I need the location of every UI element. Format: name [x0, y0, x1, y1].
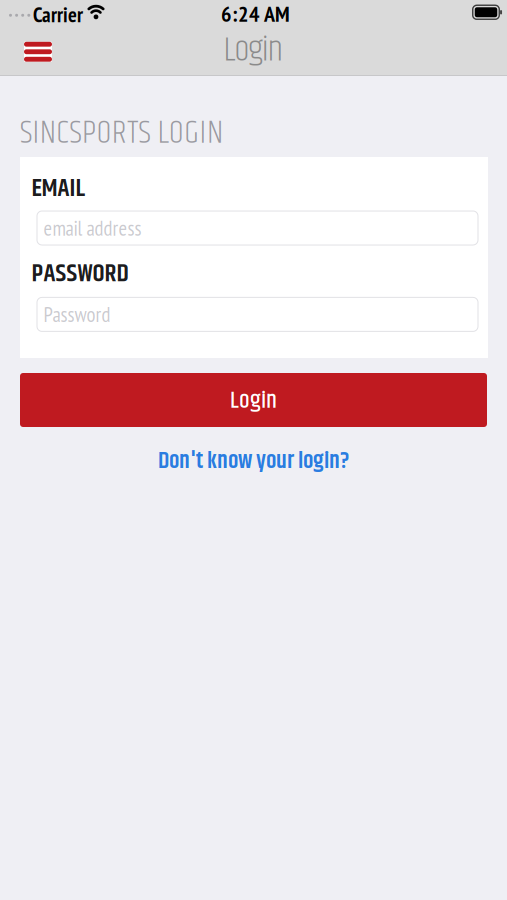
button[interactable]: Don't know your login? — [0, 443, 507, 479]
staticText: Login — [223, 24, 284, 77]
button[interactable]: Login — [20, 373, 487, 427]
staticText: Carrier — [33, 1, 83, 28]
staticText: SINCSPORTS LOGIN — [20, 108, 223, 159]
button[interactable]: Menu — [0, 26, 62, 71]
staticText: PASSWORD — [31, 255, 128, 293]
staticText: 6:24 AM — [221, 0, 290, 28]
staticText: Password — [43, 301, 110, 328]
staticText: email address — [43, 215, 141, 241]
staticText: Login — [230, 383, 277, 419]
staticText: EMAIL — [31, 169, 84, 208]
staticText: Don't know your login? — [158, 443, 349, 479]
